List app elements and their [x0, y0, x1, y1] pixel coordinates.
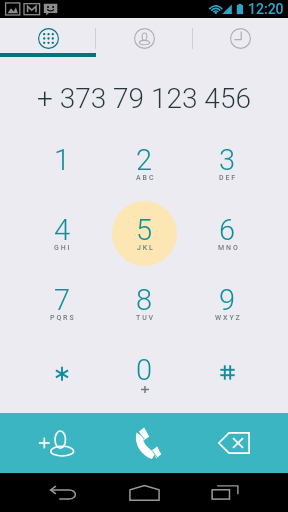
button[interactable]: 3 — [186, 131, 269, 201]
staticText: 6 — [219, 213, 236, 247]
button[interactable]: Backspace — [192, 413, 288, 473]
button[interactable]: Back — [15, 473, 111, 512]
button[interactable]: 9 — [186, 271, 269, 341]
staticText: MNO — [218, 244, 240, 252]
staticText: 2 — [136, 143, 153, 177]
staticText: DEF — [219, 174, 238, 182]
button[interactable]: Add contact — [0, 413, 96, 473]
button[interactable]: Recent apps — [177, 473, 273, 512]
button[interactable]: Contacts tab — [96, 18, 192, 57]
staticText: 5 — [136, 213, 153, 247]
staticText: 3 — [219, 143, 236, 177]
staticText: 9 — [219, 283, 236, 317]
button[interactable]: Dialpad tab — [0, 18, 96, 57]
button[interactable]: 8 — [103, 271, 186, 341]
button[interactable]: 2 — [103, 131, 186, 201]
staticText: 4 — [54, 213, 71, 247]
staticText: 1 — [54, 143, 71, 177]
button[interactable]: Recents tab — [192, 18, 288, 57]
button[interactable]: 5 — [103, 201, 186, 271]
staticText: ABC — [136, 174, 156, 182]
staticText: 8 — [136, 283, 153, 317]
staticText: TUV — [136, 314, 156, 322]
staticText: WXYZ — [215, 314, 242, 322]
button[interactable] — [21, 341, 103, 411]
staticText: 12:20 — [248, 1, 284, 17]
staticText: GHI — [54, 244, 72, 252]
staticText: PQRS — [50, 314, 76, 322]
staticText: 0 — [136, 353, 153, 387]
staticText: JKL — [137, 244, 155, 252]
staticText: + 373 79 123 456 — [37, 82, 251, 115]
button[interactable]: 4 — [21, 201, 103, 271]
button[interactable]: + 373 79 123 456 — [0, 78, 288, 118]
button[interactable]: 6 — [186, 201, 269, 271]
button[interactable]: 7 — [21, 271, 103, 341]
button[interactable]: Home — [96, 473, 192, 512]
button[interactable]: 1 — [21, 131, 103, 201]
button[interactable]: 0 — [103, 341, 186, 411]
staticText: 7 — [54, 283, 71, 317]
button[interactable]: Call — [96, 413, 192, 473]
button[interactable] — [186, 341, 269, 411]
